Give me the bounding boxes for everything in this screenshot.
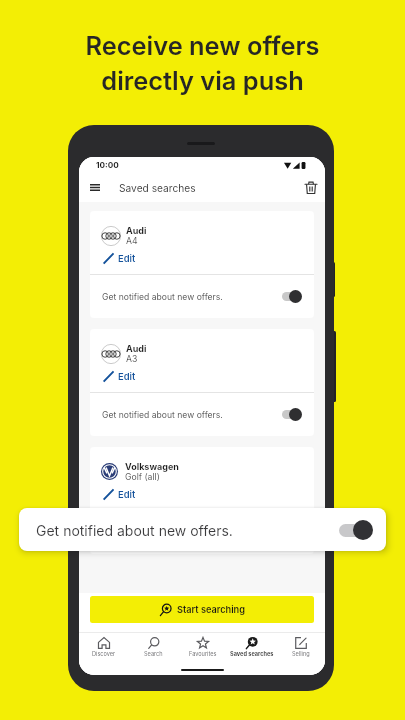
staticText: Get notified about new offers. bbox=[36, 522, 233, 539]
button[interactable]: Get notified about new offers. bbox=[19, 508, 386, 551]
staticText: Golf (all) bbox=[125, 472, 160, 483]
button[interactable]: Get notified about new offers. bbox=[90, 511, 314, 554]
button[interactable]: Saved searches bbox=[227, 637, 276, 658]
staticText: Start searching bbox=[177, 604, 245, 615]
button[interactable]: Open menu bbox=[86, 179, 103, 196]
staticText: Saved searches bbox=[119, 182, 196, 194]
staticText: Selling bbox=[292, 651, 310, 658]
staticText: Favourites bbox=[189, 651, 217, 658]
staticText: A3 bbox=[126, 354, 138, 365]
staticText: Audi bbox=[126, 343, 147, 354]
staticText: A4 bbox=[126, 236, 138, 247]
button[interactable]: Get notified about new offers. bbox=[90, 275, 314, 318]
staticText: Discover bbox=[92, 651, 116, 658]
button[interactable]: Get notified about new offers. bbox=[90, 393, 314, 436]
staticText: Edit bbox=[118, 371, 136, 382]
button[interactable]: Start searching bbox=[90, 596, 314, 623]
staticText: 10:00 bbox=[96, 160, 119, 170]
staticText: Saved searches bbox=[230, 651, 274, 658]
staticText: Volkswagen bbox=[125, 461, 179, 472]
button[interactable]: Edit bbox=[101, 371, 138, 382]
staticText: Edit bbox=[118, 253, 136, 264]
staticText: Edit bbox=[118, 489, 136, 500]
button[interactable]: Favourites bbox=[178, 637, 227, 658]
button[interactable]: Discover bbox=[79, 637, 129, 658]
staticText: Search bbox=[144, 651, 163, 658]
staticText: Audi bbox=[126, 225, 147, 236]
button[interactable]: Delete saved searches bbox=[302, 179, 319, 196]
staticText: Get notified about new offers. bbox=[102, 410, 223, 420]
staticText: Get notified about new offers. bbox=[102, 528, 223, 538]
button[interactable]: Search bbox=[129, 637, 178, 658]
button[interactable]: Selling bbox=[276, 637, 325, 658]
button[interactable]: Edit bbox=[101, 253, 138, 264]
staticText: Receive new offers directly via push bbox=[0, 30, 405, 96]
button[interactable]: Edit bbox=[101, 489, 138, 500]
staticText: Get notified about new offers. bbox=[102, 292, 223, 302]
